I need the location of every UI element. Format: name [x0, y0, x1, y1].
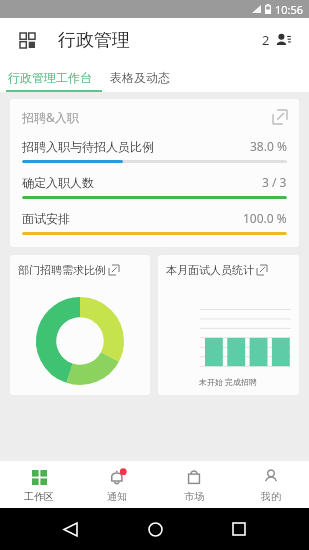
button[interactable]: 行政管理工作台	[0, 62, 100, 92]
staticText: 工作区	[24, 490, 54, 503]
button[interactable]: Recents	[224, 514, 254, 544]
staticText: 市场	[184, 490, 204, 503]
button[interactable]: Apps	[14, 27, 40, 53]
staticText: 38.0 %	[250, 138, 287, 154]
button[interactable]: Back	[55, 514, 85, 544]
button[interactable]: 表格及动态	[100, 62, 180, 92]
staticText: 通知	[107, 490, 127, 503]
button[interactable]: 本月面试人员统计	[158, 255, 299, 395]
staticText: 行政管理	[58, 29, 130, 52]
staticText: 面试安排	[22, 211, 70, 226]
button[interactable]: 工作区	[0, 461, 78, 508]
button[interactable]: 通知	[78, 461, 155, 508]
button[interactable]: 市场	[155, 461, 232, 508]
button[interactable]: Members	[258, 27, 295, 53]
button[interactable]: 招聘&入职	[10, 99, 299, 247]
staticText: 未开始 完成招聘	[199, 376, 258, 387]
button[interactable]: 我的	[232, 461, 309, 508]
staticText: 2	[262, 31, 270, 49]
staticText: 表格及动态	[110, 70, 170, 85]
staticText: 招聘&入职	[22, 109, 79, 125]
staticText: 招聘入职与待招人员比例	[22, 139, 154, 154]
button[interactable]: Expand	[273, 110, 287, 124]
staticText: 本月面试人员统计	[166, 263, 254, 277]
button[interactable]: Home	[140, 514, 170, 544]
staticText: 行政管理工作台	[8, 70, 92, 85]
button[interactable]: 部门招聘需求比例	[10, 255, 150, 395]
staticText: 100.0 %	[243, 210, 287, 226]
staticText: 我的	[261, 490, 281, 503]
staticText: 确定入职人数	[22, 175, 94, 190]
staticText: 10:56	[275, 2, 304, 17]
staticText: 部门招聘需求比例	[18, 263, 106, 277]
staticText: 3 / 3	[262, 174, 287, 190]
